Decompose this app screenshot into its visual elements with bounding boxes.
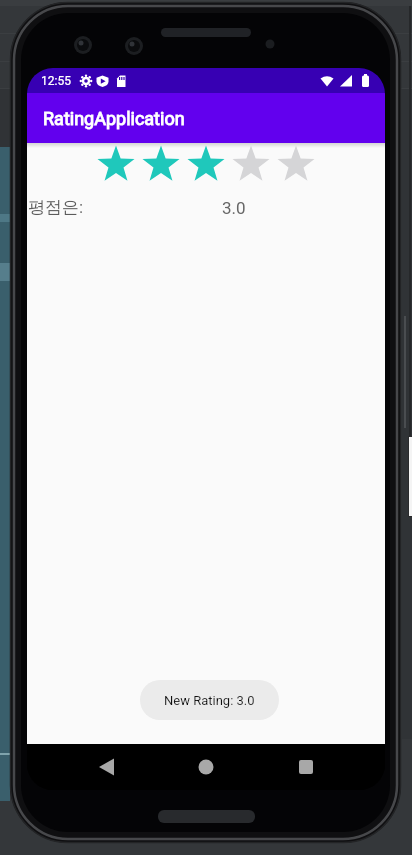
button[interactable]	[93, 147, 319, 185]
button[interactable]: New Rating: 3.0	[140, 680, 279, 720]
staticText: New Rating: 3.0	[164, 693, 255, 708]
button[interactable]	[290, 758, 322, 776]
staticText: 12:55	[41, 74, 71, 88]
staticText: 평점은:	[28, 197, 84, 218]
button[interactable]	[90, 758, 122, 776]
staticText: 3.0	[222, 198, 246, 218]
button[interactable]	[190, 758, 222, 776]
staticText: RatingApplication	[43, 108, 185, 129]
